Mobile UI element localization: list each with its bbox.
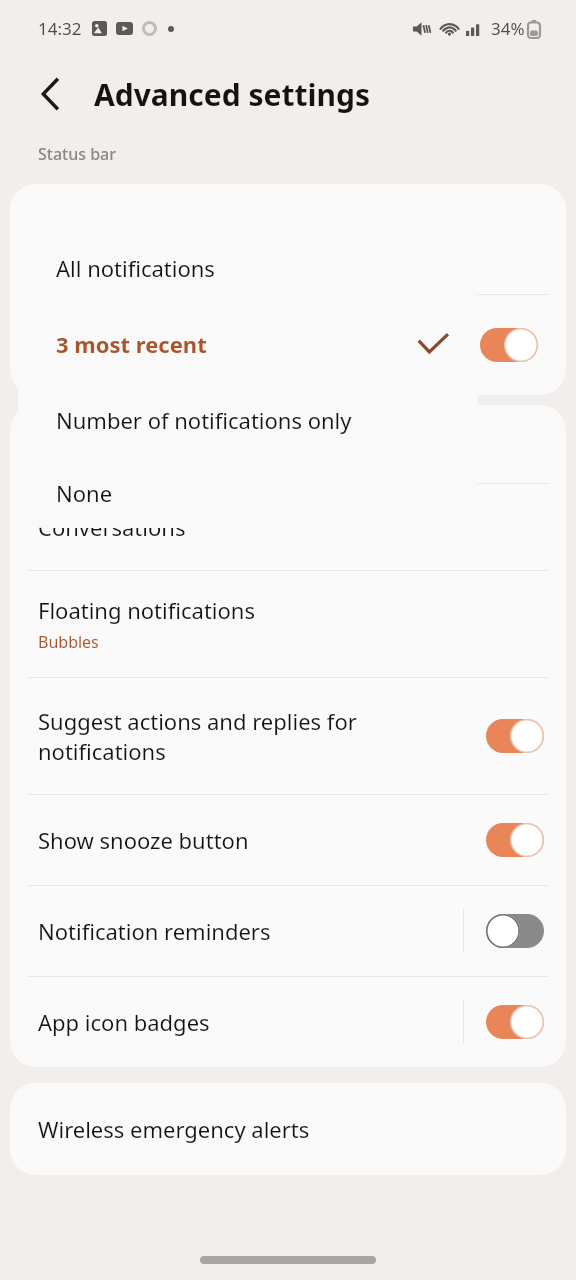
staticText: App icon badges <box>38 1007 210 1037</box>
button[interactable] <box>10 405 566 483</box>
button[interactable]: App icon badges <box>10 977 566 1067</box>
staticText: Notification reminders <box>38 916 271 946</box>
staticText: None <box>56 478 113 508</box>
button[interactable]: Back <box>26 70 74 118</box>
staticText: 14:32 <box>38 17 82 40</box>
staticText: Advanced settings <box>94 74 370 115</box>
staticText: Number of notifications only <box>56 405 352 435</box>
button[interactable] <box>10 184 566 294</box>
button[interactable]: Suggest actions and replies for notifica… <box>10 678 566 794</box>
button[interactable]: 3 most recent <box>18 306 478 382</box>
button[interactable]: All notifications <box>18 230 478 306</box>
staticText: Conversations <box>38 512 186 542</box>
button[interactable]: Toggle off <box>486 914 544 948</box>
button[interactable]: Number of notifications only <box>18 382 478 458</box>
staticText: 34% <box>491 17 525 40</box>
button[interactable]: Toggle on <box>486 719 544 753</box>
button[interactable]: Toggle on <box>486 823 544 857</box>
staticText: Wireless emergency alerts <box>38 1114 310 1144</box>
button[interactable]: Notification reminders <box>10 886 566 976</box>
staticText: Suggest actions and replies for notifica… <box>38 706 486 766</box>
staticText: 3 most recent <box>56 329 207 359</box>
staticText: Show snooze button <box>38 825 249 855</box>
staticText: Floating notifications <box>38 595 255 625</box>
button[interactable]: Toggle on <box>486 1005 544 1039</box>
staticText: Status bar <box>38 143 117 165</box>
button[interactable]: Toggle on <box>480 328 538 362</box>
button[interactable]: Wireless emergency alerts <box>10 1083 566 1175</box>
staticText: All notifications <box>56 253 215 283</box>
button[interactable]: None <box>18 458 478 528</box>
staticText: Bubbles <box>38 631 99 653</box>
button[interactable]: Floating notifications <box>10 571 566 677</box>
button[interactable]: Conversations <box>10 484 566 570</box>
button[interactable]: Show snooze button <box>10 795 566 885</box>
button[interactable]: Toggle on <box>10 295 566 395</box>
